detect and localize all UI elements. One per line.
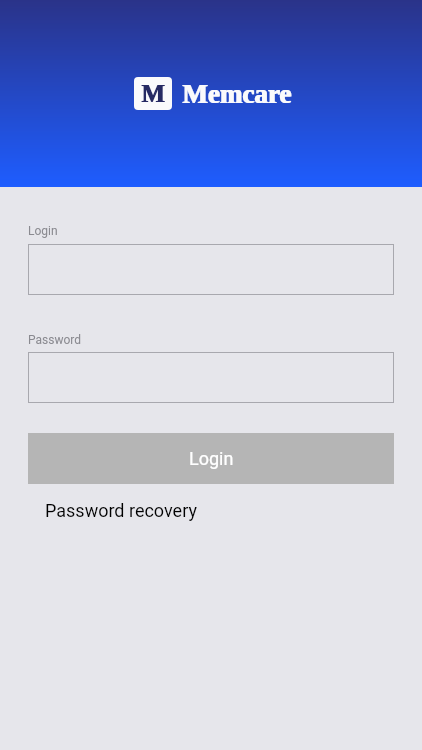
button[interactable]: Login: [28, 244, 394, 295]
button[interactable]: Login: [28, 433, 394, 484]
staticText: Password: [28, 333, 82, 347]
button[interactable]: Password recovery: [45, 500, 197, 521]
button[interactable]: Password: [28, 352, 394, 403]
staticText: Login: [28, 224, 58, 238]
staticText: M: [141, 80, 165, 108]
staticText: M: [142, 80, 166, 108]
staticText: Memcare: [183, 79, 292, 109]
staticText: Password recovery: [45, 500, 197, 521]
staticText: Memcare: [182, 79, 291, 109]
staticText: Login: [189, 448, 234, 469]
